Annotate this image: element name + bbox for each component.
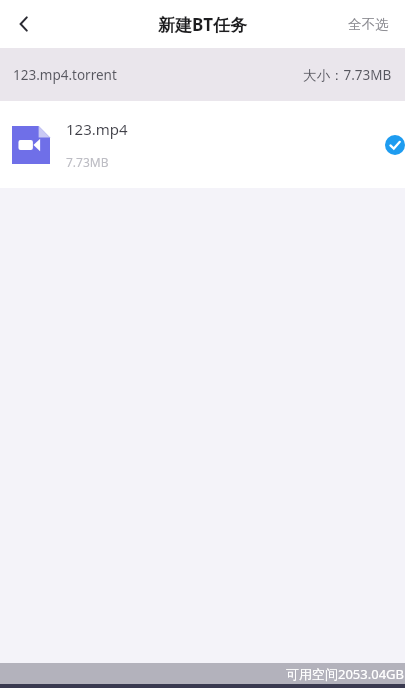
button[interactable]: Selected [373, 123, 405, 167]
staticText: 123.mp4.torrent [13, 66, 117, 84]
button[interactable]: 123.mp4 [0, 101, 405, 188]
staticText: 新建BT任务 [158, 13, 248, 36]
staticText: 大小：7.73MB [303, 66, 392, 84]
staticText: 7.73MB [66, 154, 109, 170]
staticText: 123.mp4 [66, 119, 128, 139]
staticText: 可用空间2053.04GB [286, 665, 405, 683]
button[interactable]: Back [0, 0, 48, 48]
button[interactable]: 全不选 [332, 0, 405, 48]
staticText: 全不选 [348, 16, 389, 33]
